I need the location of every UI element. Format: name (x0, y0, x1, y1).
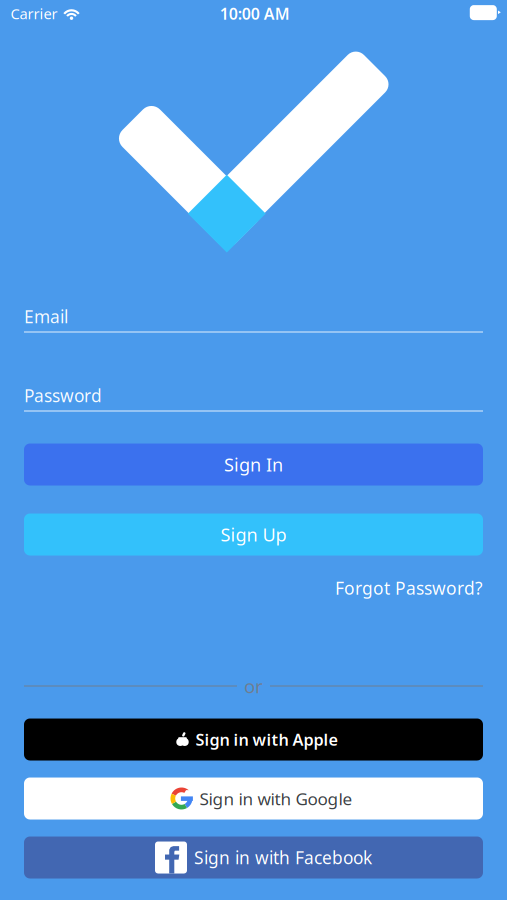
staticText: Sign in with Apple (195, 728, 338, 751)
staticText: 10:00 AM (220, 3, 290, 24)
staticText: Password (24, 384, 102, 407)
button[interactable]: Sign in with Google (24, 777, 483, 819)
button[interactable]: Sign in with Apple (24, 718, 483, 760)
staticText: Carrier (11, 4, 58, 24)
staticText: Sign in with Facebook (194, 846, 372, 869)
button[interactable]: Sign Up (24, 513, 483, 555)
button[interactable]: Forgot Password? (24, 574, 483, 602)
button[interactable]: Sign in with Facebook (24, 836, 483, 878)
staticText: Sign In (224, 452, 283, 477)
staticText: Sign Up (220, 522, 286, 547)
button[interactable]: Sign In (24, 443, 483, 485)
staticText: Sign in with Google (199, 787, 352, 810)
staticText: or (244, 673, 263, 699)
staticText: Forgot Password? (335, 576, 483, 600)
staticText: Email (24, 305, 68, 328)
